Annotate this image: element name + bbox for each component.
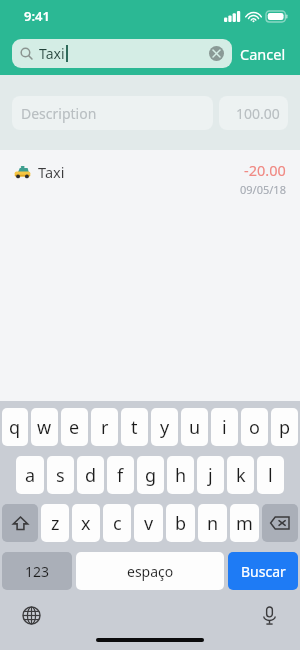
staticText: u [189,415,201,440]
staticText: b [175,511,187,536]
button[interactable]: p [271,408,298,446]
button[interactable]: d [77,456,104,494]
button[interactable]: l [257,456,284,494]
button[interactable]: Dictate [254,600,284,630]
staticText: z [51,511,60,536]
staticText: -20.00 [244,160,286,180]
button[interactable]: w [31,408,58,446]
button[interactable]: x [72,504,100,542]
button[interactable]: f [107,456,134,494]
staticText: p [279,415,291,440]
staticText: f [117,463,124,488]
button[interactable]: u [181,408,208,446]
staticText: l [268,463,273,488]
staticText: w [37,415,52,440]
staticText: 123 [25,562,50,581]
button[interactable]: t [121,408,148,446]
staticText: j [208,463,213,488]
button[interactable]: Shift [2,504,38,542]
staticText: 9:41 [24,7,50,25]
staticText: g [145,463,157,488]
staticText: d [85,463,97,488]
button[interactable]: j [197,456,224,494]
button[interactable]: Change keyboard language [16,600,46,630]
staticText: i [222,415,227,440]
button[interactable]: y [151,408,178,446]
staticText: n [207,511,219,536]
button[interactable]: b [166,504,195,542]
staticText: t [131,415,138,440]
button[interactable]: g [137,456,164,494]
button[interactable]: e [61,408,88,446]
button[interactable]: 100.00 [219,96,288,130]
staticText: e [69,415,80,440]
button[interactable]: o [241,408,268,446]
staticText: x [81,511,91,536]
button[interactable]: c [103,504,131,542]
button[interactable]: r [91,408,118,446]
button[interactable]: v [134,504,163,542]
button[interactable]: k [227,456,254,494]
button[interactable]: Clear text [209,46,224,61]
button[interactable]: Cancel [232,40,288,68]
staticText: Cancel [240,44,286,64]
button[interactable]: Taxi [0,150,300,204]
staticText: v [144,511,154,536]
button[interactable]: Description [12,96,213,130]
button[interactable]: Buscar [228,552,298,590]
staticText: 100.00 [236,104,280,123]
button[interactable]: i [211,408,238,446]
staticText: Description [21,104,97,123]
button[interactable]: m [230,504,259,542]
button[interactable]: a [16,456,44,494]
button[interactable]: q [2,408,28,446]
staticText: 09/05/18 [240,182,286,197]
staticText: q [9,415,21,440]
staticText: y [160,415,170,440]
button[interactable]: s [47,456,74,494]
button[interactable]: Taxi [12,39,232,68]
staticText: Taxi [38,162,65,182]
staticText: r [101,415,109,440]
button[interactable]: Backspace [262,504,298,542]
staticText: s [56,463,65,488]
button[interactable]: h [167,456,194,494]
button[interactable]: 123 [2,552,72,590]
staticText: Buscar [241,562,286,581]
staticText: c [113,511,122,536]
staticText: k [236,463,246,488]
staticText: a [25,463,36,488]
staticText: o [249,415,260,440]
staticText: espaço [127,562,174,581]
button[interactable]: espaço [76,552,224,590]
button[interactable]: z [41,504,69,542]
staticText: m [236,511,253,536]
staticText: Taxi [39,44,65,63]
button[interactable]: n [198,504,227,542]
staticText: h [175,463,187,488]
